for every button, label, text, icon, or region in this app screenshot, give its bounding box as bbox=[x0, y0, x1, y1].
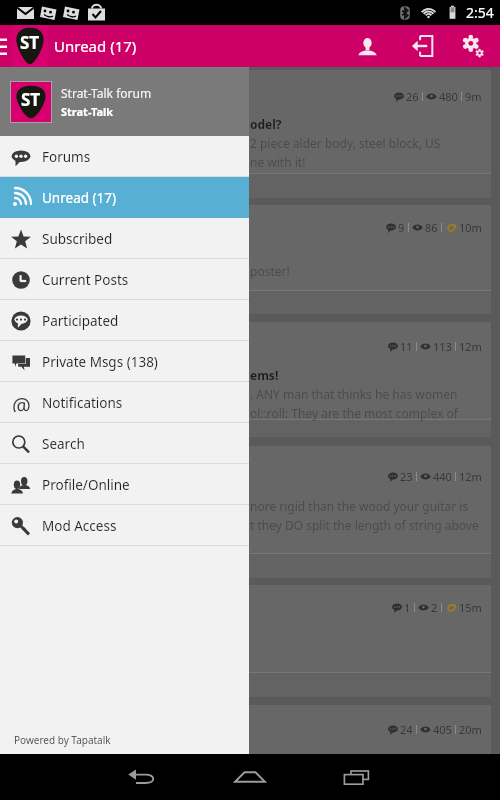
staticText: 2:54 bbox=[466, 3, 494, 22]
staticText: . ANY man that thinks he has women bbox=[250, 386, 458, 402]
button[interactable]: Recent apps bbox=[334, 754, 380, 800]
button[interactable]: Mod Access bbox=[0, 505, 249, 546]
button[interactable]: Search bbox=[0, 423, 249, 464]
staticText: 1 bbox=[404, 600, 411, 615]
staticText: Powered by Tapatalk bbox=[14, 733, 111, 747]
button[interactable] bbox=[0, 705, 491, 790]
staticText: ol::roll: They are the most complex of bbox=[250, 405, 458, 421]
staticText: poster! bbox=[250, 263, 290, 279]
staticText: Profile/Online bbox=[42, 476, 130, 494]
staticText: odel? bbox=[250, 116, 282, 132]
staticText: ST bbox=[20, 31, 40, 54]
staticText: Strat-Talk bbox=[61, 104, 114, 119]
staticText: 86 bbox=[425, 220, 438, 235]
button[interactable] bbox=[0, 446, 491, 578]
button[interactable]: Settings bbox=[452, 25, 494, 67]
button[interactable] bbox=[0, 585, 491, 697]
staticText: 405 bbox=[433, 722, 452, 737]
staticText: 480 bbox=[439, 89, 458, 104]
staticText: Forums bbox=[42, 148, 91, 166]
button[interactable]: Home bbox=[227, 754, 273, 800]
staticText: 2 bbox=[431, 600, 438, 615]
staticText: @ bbox=[12, 392, 31, 412]
staticText: nore rigid than the wood your guitar is bbox=[250, 498, 469, 514]
button[interactable]: ST bbox=[0, 67, 249, 136]
staticText: 10m bbox=[459, 220, 482, 235]
staticText: Mod Access bbox=[42, 517, 117, 535]
button[interactable]: Profile/Online bbox=[0, 464, 249, 505]
staticText: Private Msgs (138) bbox=[42, 353, 158, 371]
staticText: ST bbox=[21, 88, 41, 111]
staticText: Notifications bbox=[42, 394, 123, 412]
staticText: 2 piece alder body, steel block, US bbox=[250, 135, 441, 151]
staticText: Subscribed bbox=[42, 230, 113, 248]
button[interactable] bbox=[0, 205, 491, 314]
staticText: 23 bbox=[400, 469, 413, 484]
staticText: 12m bbox=[459, 469, 482, 484]
staticText: 12m bbox=[459, 339, 482, 354]
staticText: Unread (17) bbox=[42, 189, 117, 207]
button[interactable] bbox=[0, 322, 491, 437]
button[interactable]: Back bbox=[119, 754, 165, 800]
button[interactable]: Subscribed bbox=[0, 218, 249, 259]
staticText: t they DO split the length of string abo… bbox=[250, 517, 479, 533]
staticText: 26 bbox=[406, 89, 419, 104]
button[interactable]: Profile bbox=[346, 25, 388, 67]
button[interactable]: @ bbox=[0, 382, 249, 423]
button[interactable]: Forums bbox=[0, 136, 249, 177]
button[interactable]: Private Msgs (138) bbox=[0, 341, 249, 382]
staticText: 9m bbox=[465, 89, 482, 104]
staticText: ne with it! bbox=[250, 154, 306, 170]
button[interactable]: Log out bbox=[401, 25, 443, 67]
staticText: Unread (17) bbox=[54, 36, 137, 56]
button[interactable] bbox=[0, 70, 491, 198]
button[interactable]: Participated bbox=[0, 300, 249, 341]
staticText: 24 bbox=[400, 722, 413, 737]
staticText: 113 bbox=[433, 339, 452, 354]
staticText: 20m bbox=[459, 722, 482, 737]
staticText: Strat-Talk forum bbox=[61, 85, 152, 101]
staticText: Participated bbox=[42, 312, 119, 330]
button[interactable]: Current Posts bbox=[0, 259, 249, 300]
staticText: Current Posts bbox=[42, 271, 129, 289]
staticText: ems! bbox=[250, 367, 279, 383]
staticText: 9 bbox=[398, 220, 405, 235]
button[interactable]: Open navigation drawer bbox=[0, 25, 19, 67]
staticText: 15m bbox=[459, 600, 482, 615]
button[interactable]: Unread (17) bbox=[0, 177, 249, 218]
staticText: 11 bbox=[400, 339, 413, 354]
staticText: 440 bbox=[433, 469, 452, 484]
staticText: Search bbox=[42, 435, 85, 453]
